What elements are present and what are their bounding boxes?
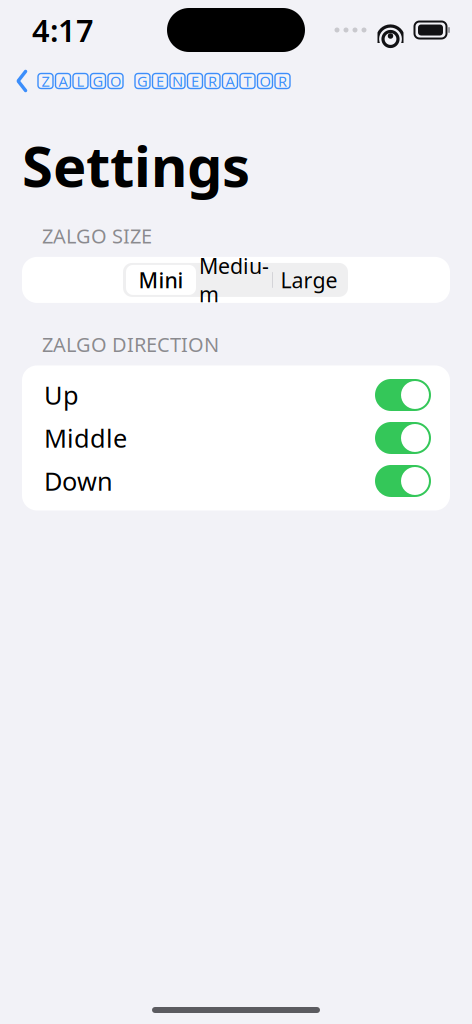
button[interactable]: Mini	[126, 265, 196, 295]
staticText: Mini	[138, 266, 183, 294]
staticText: L	[76, 71, 84, 91]
button[interactable]: Up	[22, 373, 450, 416]
staticText: A	[58, 71, 67, 91]
staticText: R	[208, 71, 217, 91]
staticText: E	[191, 71, 199, 91]
button[interactable]: Medium	[196, 265, 272, 295]
staticText: G	[137, 71, 148, 91]
staticText: Medium	[199, 252, 269, 308]
staticText: ZALGO DIRECTION	[42, 331, 219, 357]
button[interactable]: Down	[22, 459, 450, 502]
staticText: A	[225, 71, 234, 91]
button[interactable]: Back to Zalgo Generator	[0, 62, 300, 100]
staticText: O	[110, 71, 121, 91]
staticText: Up	[44, 378, 79, 412]
staticText: T	[243, 71, 251, 91]
button[interactable]: Middle	[22, 416, 450, 459]
staticText: 4:17	[32, 10, 94, 50]
staticText: N	[172, 71, 183, 91]
staticText: O	[259, 71, 270, 91]
staticText: Large	[280, 266, 337, 294]
staticText: E	[156, 71, 164, 91]
staticText: G	[92, 71, 103, 91]
button[interactable]: Large	[273, 265, 345, 295]
staticText: Settings	[22, 128, 250, 202]
staticText: ZALGO SIZE	[42, 222, 152, 249]
staticText: Middle	[44, 421, 127, 455]
staticText: Down	[44, 464, 113, 498]
staticText: R	[278, 71, 287, 91]
staticText: Z	[41, 71, 49, 91]
